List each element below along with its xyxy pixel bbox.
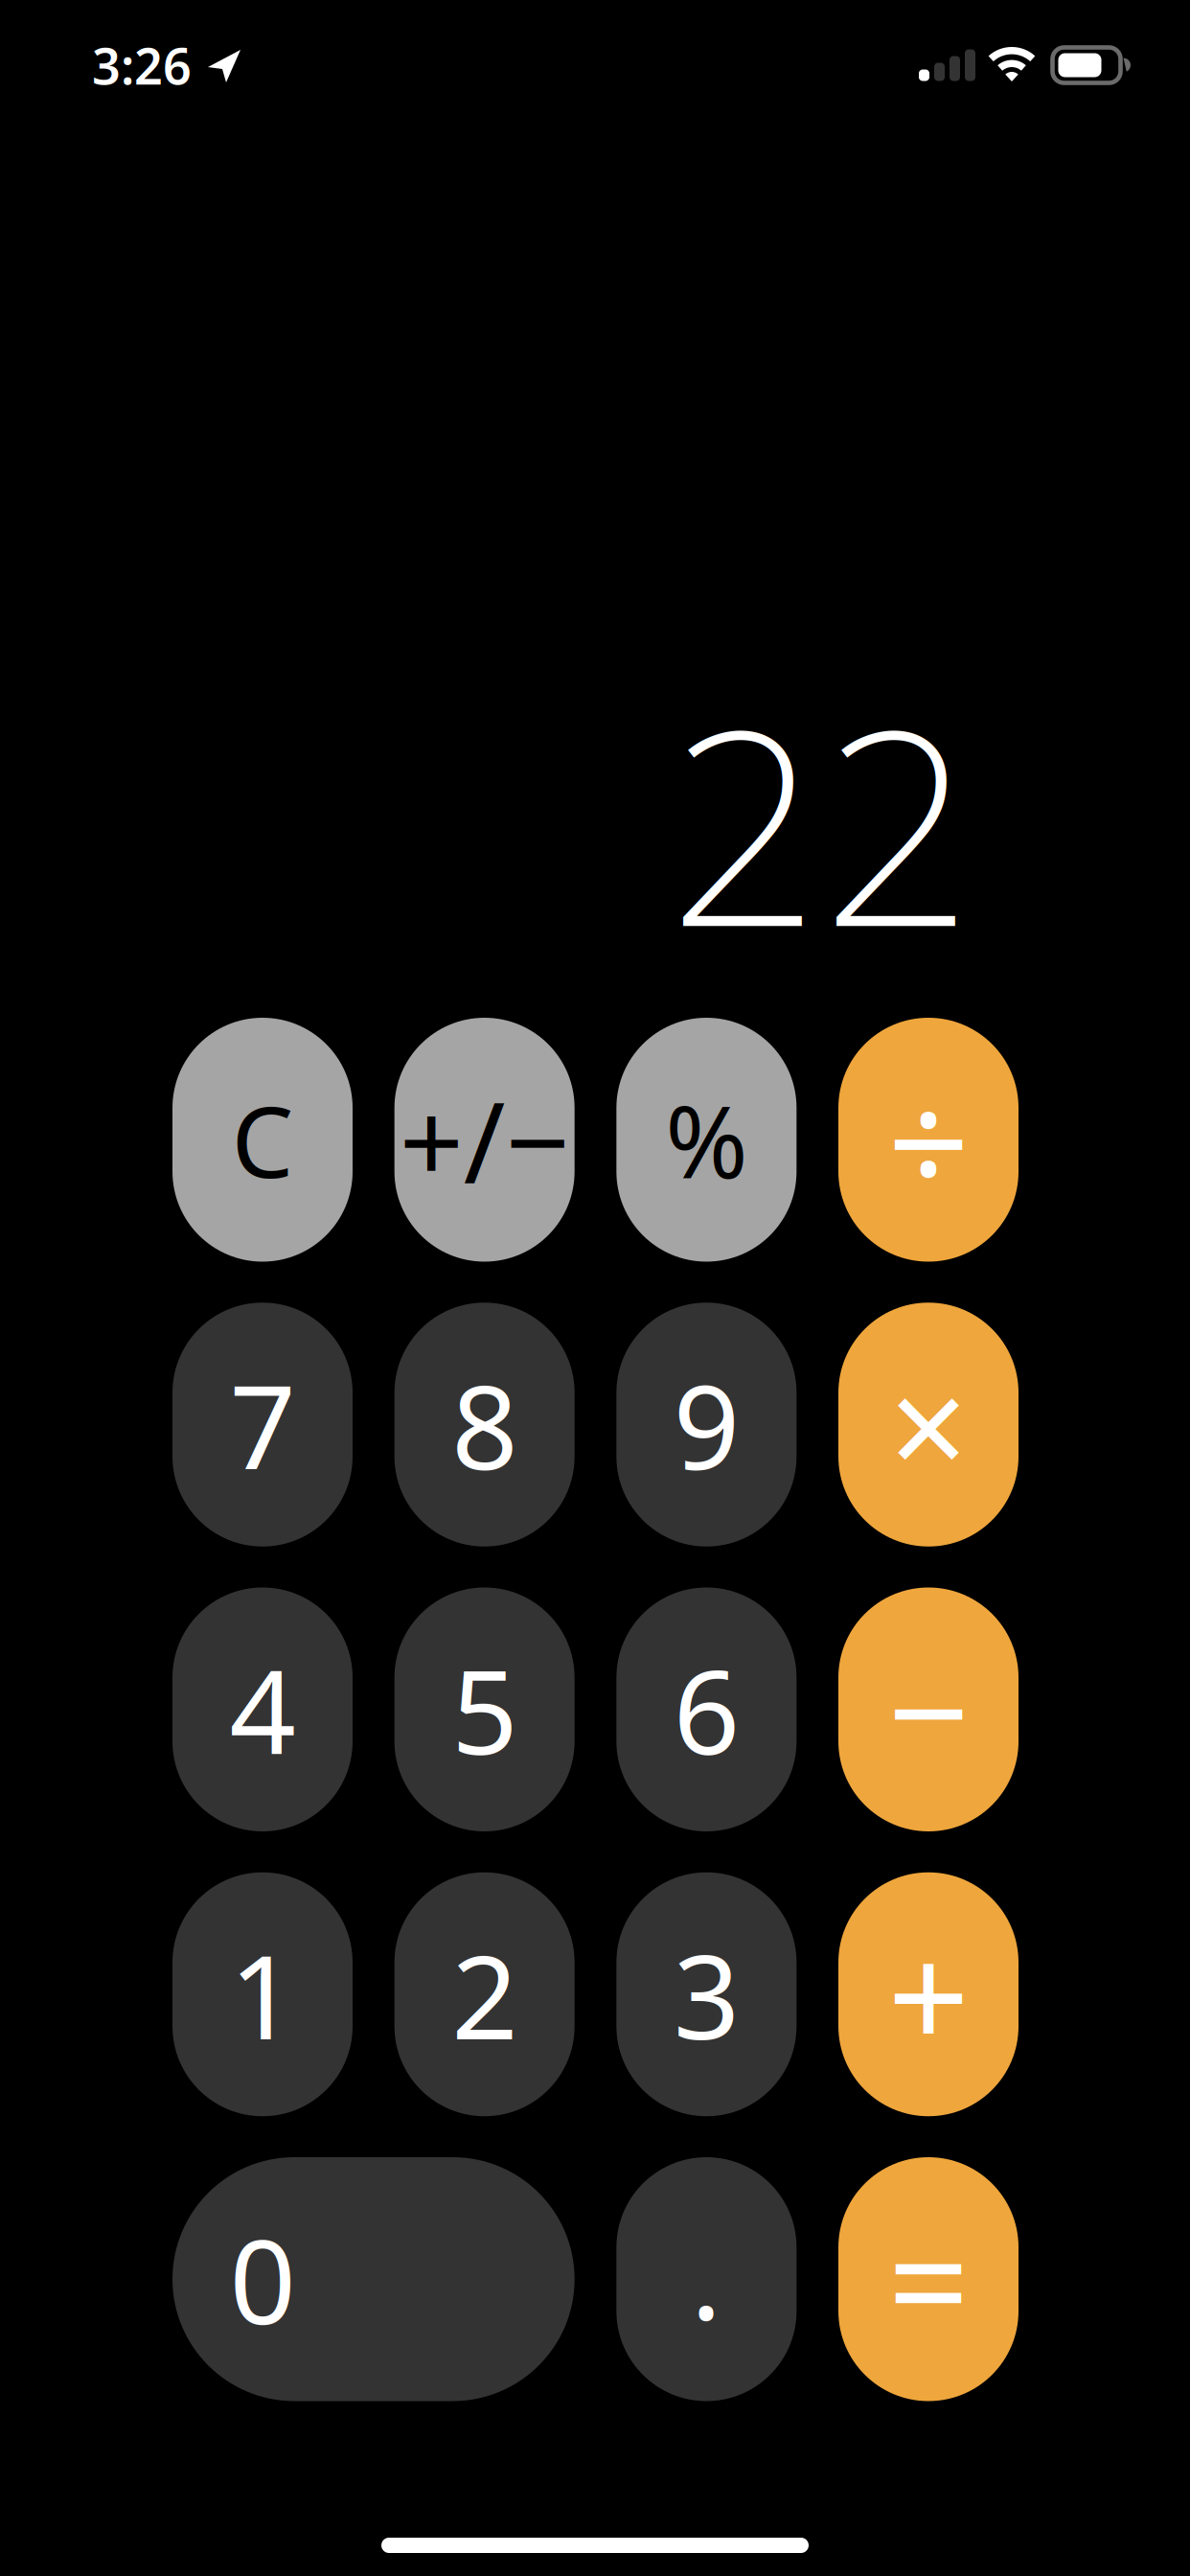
- staticText: 22: [668, 642, 974, 1000]
- button[interactable]: 4: [172, 1587, 353, 1831]
- staticText: 0: [229, 2202, 296, 2356]
- button[interactable]: 5: [394, 1587, 575, 1831]
- staticText: 5: [451, 1632, 518, 1787]
- staticText: ×: [889, 1333, 968, 1516]
- button[interactable]: Plus minus: [394, 1018, 575, 1262]
- staticText: 3:26: [92, 32, 192, 98]
- button[interactable]: Percent: [616, 1018, 796, 1262]
- button[interactable]: Minus: [838, 1587, 1018, 1831]
- staticText: C: [231, 1074, 294, 1205]
- button[interactable]: Equals: [838, 2157, 1018, 2401]
- button[interactable]: 1: [172, 1872, 353, 2116]
- button[interactable]: Divide: [838, 1018, 1018, 1262]
- staticText: 7: [229, 1347, 296, 1502]
- button[interactable]: 9: [616, 1303, 796, 1546]
- button[interactable]: 2: [394, 1872, 575, 2116]
- staticText: %: [665, 1074, 748, 1206]
- button[interactable]: 8: [394, 1303, 575, 1546]
- staticText: 1: [229, 1917, 296, 2071]
- staticText: +: [888, 1899, 969, 2089]
- staticText: =: [888, 2184, 969, 2374]
- staticText: 3: [673, 1917, 739, 2071]
- staticText: 4: [229, 1632, 296, 1787]
- button[interactable]: Clear: [172, 1018, 353, 1262]
- staticText: .: [691, 2197, 722, 2352]
- staticText: +/−: [399, 1065, 570, 1214]
- button[interactable]: 3: [616, 1872, 796, 2116]
- staticText: 2: [451, 1917, 518, 2071]
- button[interactable]: 6: [616, 1587, 796, 1831]
- staticText: ÷: [888, 1045, 969, 1235]
- staticText: −: [888, 1614, 969, 1804]
- staticText: 9: [673, 1347, 739, 1502]
- button[interactable]: Multiply: [838, 1303, 1018, 1546]
- button[interactable]: 0: [172, 2157, 575, 2401]
- staticText: 8: [451, 1347, 518, 1502]
- staticText: 6: [673, 1632, 739, 1787]
- button[interactable]: Decimal point: [616, 2157, 796, 2401]
- button[interactable]: 7: [172, 1303, 353, 1546]
- button[interactable]: Plus: [838, 1872, 1018, 2116]
